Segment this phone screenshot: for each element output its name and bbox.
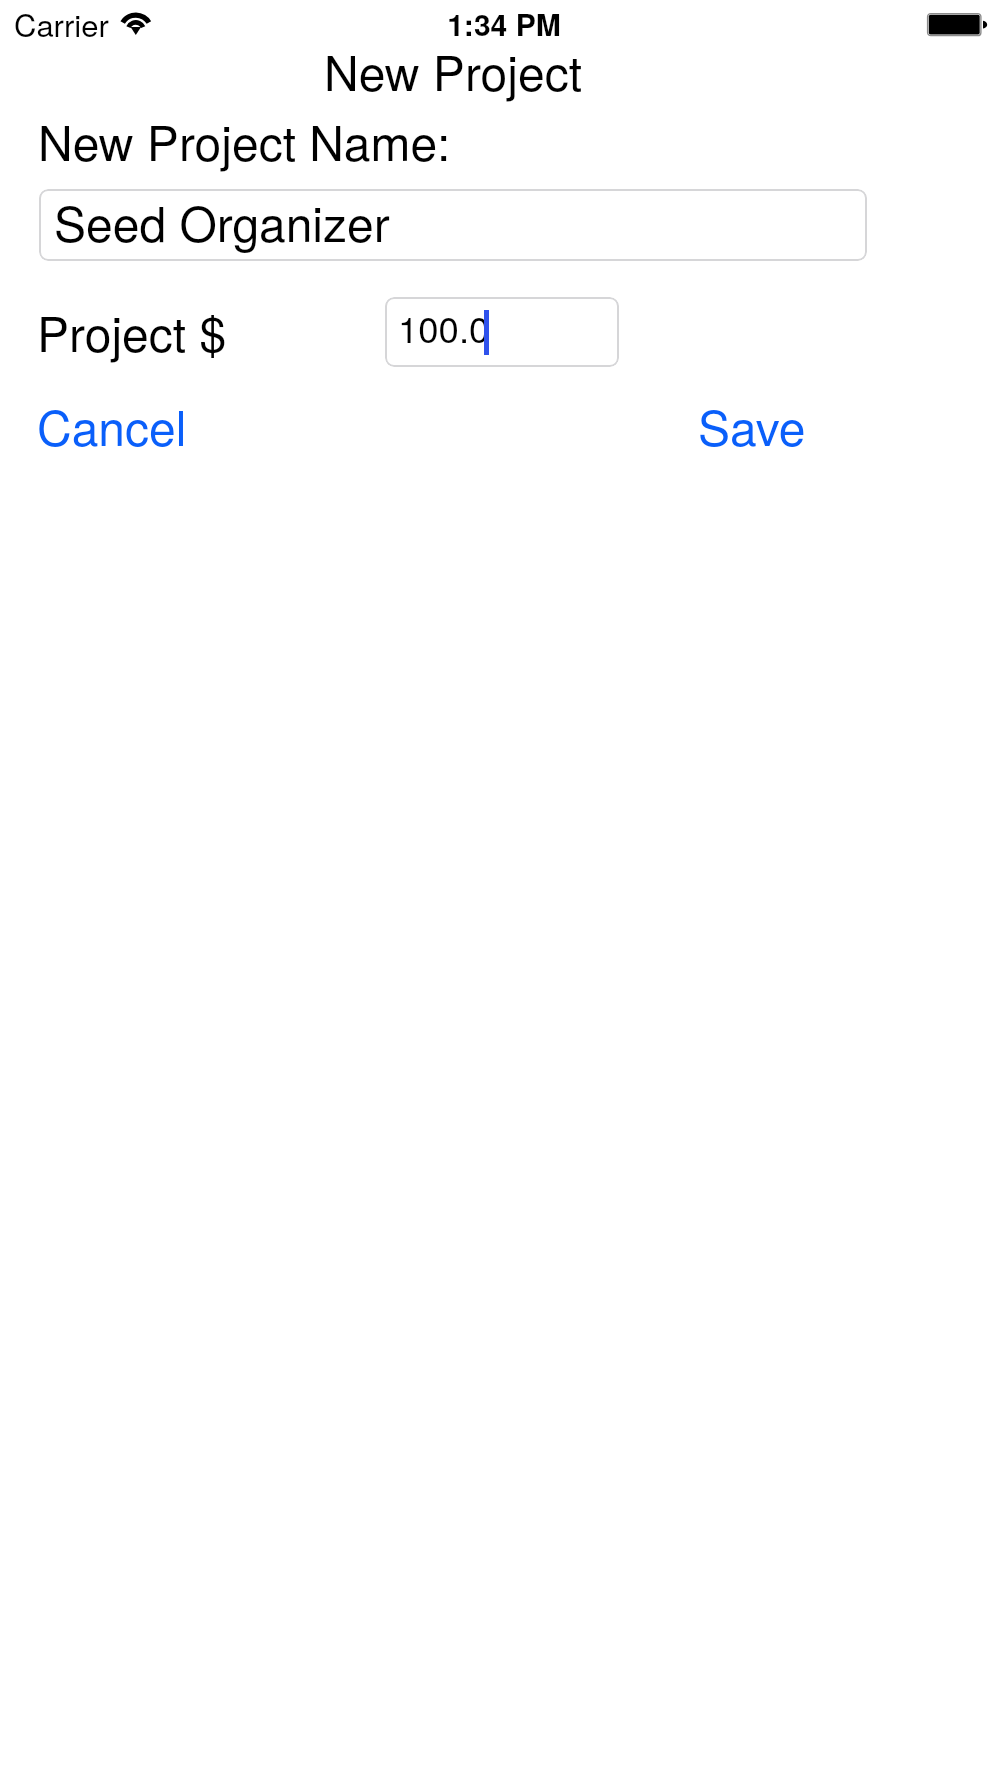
staticText: 100.0 (398, 301, 490, 353)
staticText: Cancel (37, 391, 187, 455)
staticText: New Project (0, 36, 953, 105)
button[interactable]: 100.0 (385, 297, 619, 367)
button[interactable]: Cancel (30, 396, 196, 460)
staticText: Project $ (37, 297, 227, 366)
staticText: Seed Organizer (54, 189, 390, 256)
staticText: New Project Name: (38, 106, 451, 175)
staticText: 1:34 PM (4, 2, 1000, 45)
button[interactable]: Seed Organizer (39, 189, 867, 261)
staticText: Save (698, 391, 806, 455)
button[interactable]: Save (690, 396, 814, 460)
other: Battery full (927, 13, 987, 37)
staticText: Carrier (14, 1, 109, 45)
other: Wi-Fi signal (120, 12, 151, 35)
